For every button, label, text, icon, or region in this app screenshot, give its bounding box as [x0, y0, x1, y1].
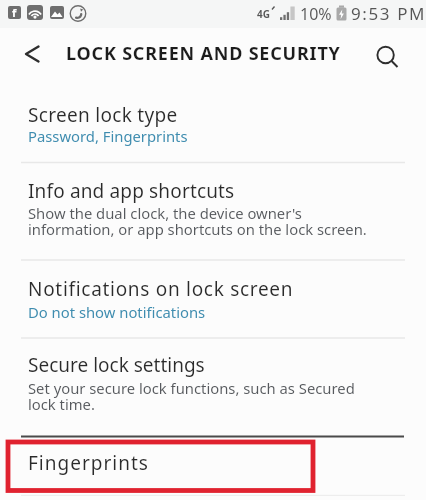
staticText: Screen lock type [28, 102, 178, 128]
button[interactable]: Fingerprints [0, 436, 426, 495]
staticText: Password, Fingerprints [28, 126, 188, 146]
staticText: LOCK SCREEN AND SECURITY [66, 41, 341, 66]
button[interactable]: Info and app shortcuts [0, 162, 426, 260]
staticText: f [12, 6, 17, 18]
button[interactable] [366, 37, 406, 77]
button[interactable]: Notifications on lock screen [0, 260, 426, 338]
staticText: Show the dual clock, the device owner's [28, 203, 302, 223]
staticText: Set your secure lock functions, such as … [28, 378, 355, 398]
staticText: Info and app shortcuts [28, 178, 235, 204]
staticText: 10% [300, 3, 332, 25]
staticText: lock time. [28, 394, 95, 414]
staticText: Secure lock settings [28, 352, 205, 378]
button[interactable]: Screen lock type [0, 86, 426, 162]
staticText: Notifications on lock screen [28, 276, 294, 302]
staticText: 4G [257, 7, 270, 21]
button[interactable]: Secure lock settings [0, 338, 426, 436]
button[interactable] [14, 40, 50, 76]
staticText: 9:53 PM [351, 2, 426, 25]
staticText: Fingerprints [28, 450, 149, 476]
staticText: Do not show notifications [28, 302, 206, 322]
staticText: information, or app shortcuts on the loc… [28, 219, 367, 239]
